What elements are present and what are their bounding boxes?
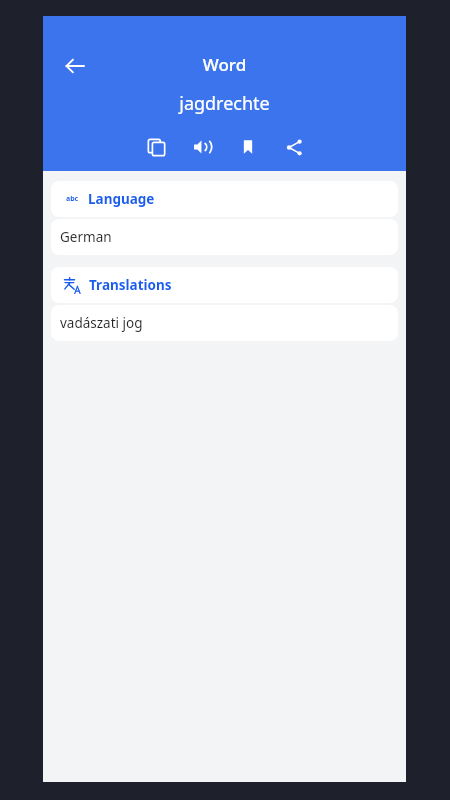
staticText: German	[60, 228, 112, 246]
button[interactable]: Back	[53, 44, 97, 88]
button[interactable]: Listen	[189, 134, 215, 160]
button[interactable]: abc	[51, 181, 398, 217]
staticText: Word	[43, 53, 406, 76]
staticText: jagdrechte	[43, 91, 406, 116]
button[interactable]: Copy	[143, 134, 169, 160]
staticText: abc	[66, 194, 79, 204]
button[interactable]: Share	[281, 134, 307, 160]
button[interactable]: German	[51, 219, 398, 255]
staticText: vadászati jog	[60, 314, 143, 332]
button[interactable]: vadászati jog	[51, 305, 398, 341]
staticText: Translations	[89, 276, 172, 294]
button[interactable]: Translations	[51, 267, 398, 303]
staticText: Language	[88, 190, 155, 208]
button[interactable]: Bookmark	[235, 134, 261, 160]
